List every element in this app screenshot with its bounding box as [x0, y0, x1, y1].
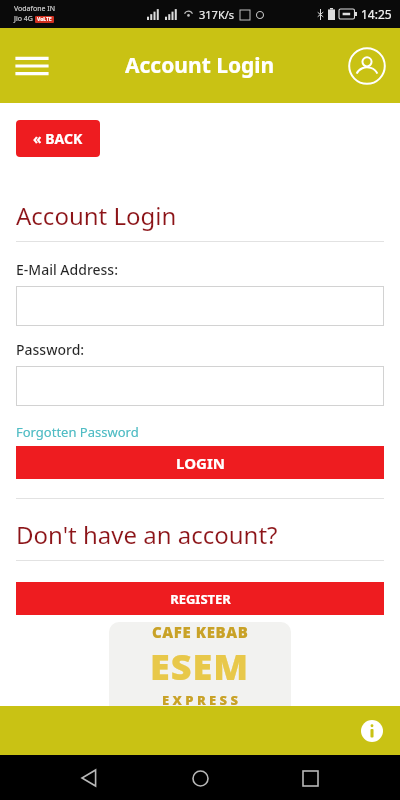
staticText: Jio 4G [14, 14, 35, 24]
button[interactable]: REGISTER [16, 582, 384, 615]
button[interactable]: Menu [8, 42, 56, 90]
staticText: 317K/s [199, 7, 235, 22]
button[interactable]: Account [344, 43, 390, 89]
staticText: « BACK [33, 129, 83, 148]
staticText: E-Mail Address: [16, 260, 118, 279]
staticText: Account Login [125, 51, 275, 80]
button[interactable]: « BACK [16, 120, 100, 157]
button[interactable]: Cafe Kebab Esem Express logo [109, 622, 291, 706]
button[interactable]: Forgotten Password [16, 423, 139, 441]
staticText: Forgotten Password [16, 423, 139, 441]
staticText: Password: [16, 340, 85, 359]
staticText: Vodafone IN [14, 4, 55, 14]
button[interactable]: Back [70, 758, 110, 798]
staticText: 14:25 [361, 6, 392, 22]
button[interactable] [16, 366, 384, 406]
staticText: ESEM [150, 642, 250, 691]
staticText: Account Login [16, 199, 177, 232]
staticText: LOGIN [176, 453, 225, 473]
button[interactable]: LOGIN [16, 446, 384, 479]
button[interactable]: Information [352, 711, 392, 751]
button[interactable]: Recents [290, 758, 330, 798]
staticText: Don't have an account? [16, 518, 278, 551]
staticText: REGISTER [170, 590, 231, 608]
staticText: E X P R E S S [162, 691, 238, 706]
button[interactable] [16, 286, 384, 326]
staticText: CAFE KEBAB [152, 622, 249, 642]
staticText: VoLTE [37, 16, 52, 23]
button[interactable]: Home [180, 758, 220, 798]
